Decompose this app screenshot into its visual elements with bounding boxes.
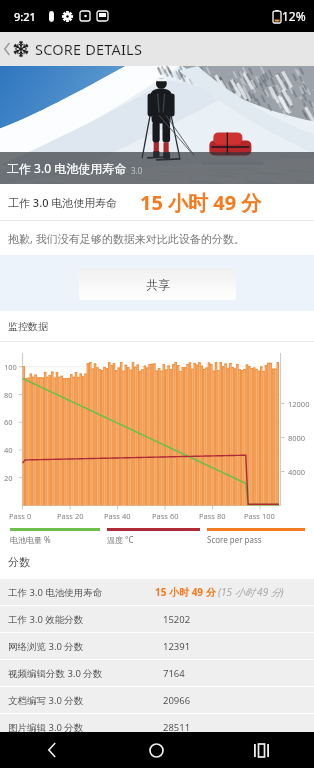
staticText: 视频编辑分数 3.0 分数: [8, 667, 163, 680]
staticText: 60: [4, 417, 13, 427]
staticText: 8000: [288, 433, 306, 443]
staticText: Pass 40: [104, 511, 131, 521]
staticText: Pass 0: [9, 511, 32, 521]
staticText: 温度 °C: [107, 534, 207, 545]
staticText: 15 小时 49 分: [140, 189, 262, 216]
staticText: 图片编辑 3.0 分数: [8, 721, 163, 734]
button[interactable]: Recent apps: [209, 732, 314, 768]
staticText: 工作 3.0 电池使用寿命: [8, 586, 155, 599]
staticText: Pass 80: [199, 511, 226, 521]
button[interactable]: 工作 3.0 电池使用寿命: [8, 579, 314, 605]
staticText: 4000: [288, 467, 306, 477]
staticText: Pass 20: [57, 511, 84, 521]
staticText: 15 小时 49 分: [155, 585, 216, 599]
staticText: 电池电量 %: [10, 534, 107, 545]
staticText: 工作 3.0 电池使用寿命: [7, 160, 127, 176]
staticText: 共享: [146, 277, 170, 292]
button[interactable]: Back: [0, 732, 104, 768]
staticText: 网络浏览 3.0 分数: [8, 640, 163, 653]
staticText: 40: [4, 445, 13, 455]
staticText: 12391: [163, 640, 191, 653]
staticText: Pass 100: [244, 511, 275, 521]
button[interactable]: Back: [0, 34, 13, 64]
button[interactable]: 文档编写 3.0 分数: [8, 687, 314, 713]
button[interactable]: 视频编辑分数 3.0 分数: [8, 660, 314, 686]
button[interactable]: 共享: [79, 268, 236, 300]
staticText: 12000: [288, 399, 310, 409]
staticText: 工作 3.0 效能分数: [8, 613, 163, 626]
staticText: (15 小时 49 分): [218, 585, 284, 599]
button[interactable]: Home: [104, 732, 209, 768]
button[interactable]: 网络浏览 3.0 分数: [8, 633, 314, 659]
staticText: 15202: [163, 613, 191, 626]
staticText: 文档编写 3.0 分数: [8, 694, 163, 707]
staticText: Pass 60: [152, 511, 179, 521]
staticText: 28511: [163, 721, 191, 734]
staticText: 工作 3.0 电池使用寿命: [8, 195, 118, 210]
staticText: 80: [4, 390, 13, 400]
staticText: 抱歉, 我们没有足够的数据来对比此设备的分数。: [8, 231, 245, 246]
staticText: 7164: [163, 667, 185, 680]
staticText: 20966: [163, 694, 191, 707]
button[interactable]: 图片编辑 3.0 分数: [8, 714, 314, 740]
staticText: 监控数据: [8, 320, 48, 333]
staticText: 20: [4, 473, 13, 483]
staticText: 12%: [282, 8, 306, 24]
staticText: 分数: [8, 555, 30, 569]
staticText: 3.0: [131, 165, 143, 176]
staticText: SCORE DETAILS: [35, 39, 143, 59]
staticText: 100: [4, 362, 17, 372]
staticText: 9:21: [14, 9, 36, 24]
button[interactable]: 工作 3.0 效能分数: [8, 606, 314, 632]
staticText: Score per pass: [207, 534, 262, 545]
